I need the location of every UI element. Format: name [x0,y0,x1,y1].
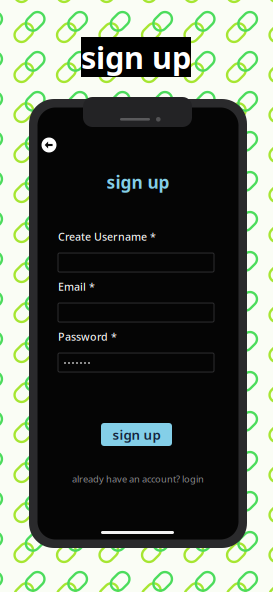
button[interactable]: sign up [101,423,172,446]
staticText: Email * [58,279,95,294]
staticText: sign up [106,170,169,193]
staticText: Create Username * [58,229,156,244]
button[interactable]: already have an account? login [37,472,238,486]
button[interactable]: Back [37,133,61,157]
staticText: Password * [58,329,117,344]
staticText: sign up [112,426,160,443]
staticText: already have an account? login [72,473,204,485]
staticText: sign up [81,37,191,77]
